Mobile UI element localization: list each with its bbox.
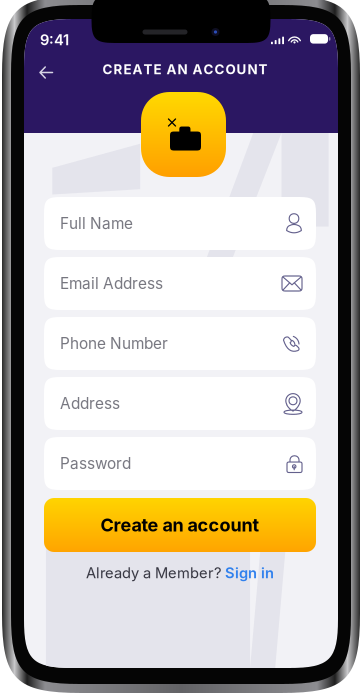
button[interactable]: Phone Number <box>44 317 316 370</box>
button[interactable]: Password <box>44 437 316 490</box>
button[interactable]: Already a Member? <box>86 564 274 582</box>
staticText: C R E A T E A N A C C O U N T <box>102 61 267 77</box>
staticText: Already a Member? <box>86 564 221 582</box>
staticText: Address <box>60 394 120 413</box>
staticText: Phone Number <box>60 334 168 353</box>
button[interactable]: Address <box>44 377 316 430</box>
button[interactable]: Email Address <box>44 257 316 310</box>
staticText: Email Address <box>60 274 163 293</box>
staticText: Sign in <box>225 564 274 582</box>
button[interactable]: Full Name <box>44 197 316 250</box>
staticText: Password <box>60 454 131 473</box>
staticText: Full Name <box>60 214 133 233</box>
button[interactable]: Back <box>29 56 63 89</box>
button[interactable]: Create an account <box>44 498 316 552</box>
staticText: Create an account <box>100 514 259 536</box>
staticText: 9:41 <box>40 31 69 49</box>
